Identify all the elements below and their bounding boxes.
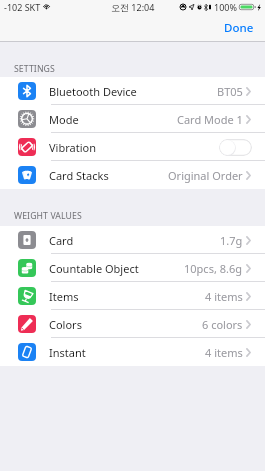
staticText: WEIGHT VALUES [14,210,82,222]
button[interactable]: Vibration [0,133,265,161]
staticText: Card Mode 1 [177,112,243,127]
button[interactable]: Items [0,282,265,310]
staticText: -102 SKT [4,1,41,13]
staticText: Countable Object [49,261,139,276]
staticText: Mode [49,112,79,127]
button[interactable]: Bluetooth Device [0,77,265,105]
staticText: 1.7g [220,233,243,248]
staticText: 4 items [205,345,243,360]
staticText: Card [49,233,74,248]
staticText: 4 items [205,289,243,304]
button[interactable]: Vibration toggle [219,139,252,156]
button[interactable]: Card [0,226,265,254]
button[interactable]: Card Stacks [0,161,265,189]
staticText: 100% [214,1,237,13]
staticText: Original Order [168,168,243,183]
button[interactable]: Instant [0,338,265,366]
staticText: Done [224,20,254,36]
staticText: Vibration [49,140,96,155]
staticText: Colors [49,317,82,332]
button[interactable]: Mode [0,105,265,133]
staticText: 오전 12:04 [111,1,155,13]
staticText: BT05 [217,84,243,99]
staticText: 10pcs, 8.6g [184,261,243,276]
staticText: Instant [49,345,86,360]
button[interactable]: Colors [0,310,265,338]
button[interactable]: Done [212,17,265,39]
button[interactable]: Countable Object [0,254,265,282]
staticText: Card Stacks [49,168,109,183]
staticText: 6 colors [202,317,243,332]
staticText: Items [49,289,79,304]
staticText: SETTINGS [14,63,55,75]
staticText: Bluetooth Device [49,84,137,99]
